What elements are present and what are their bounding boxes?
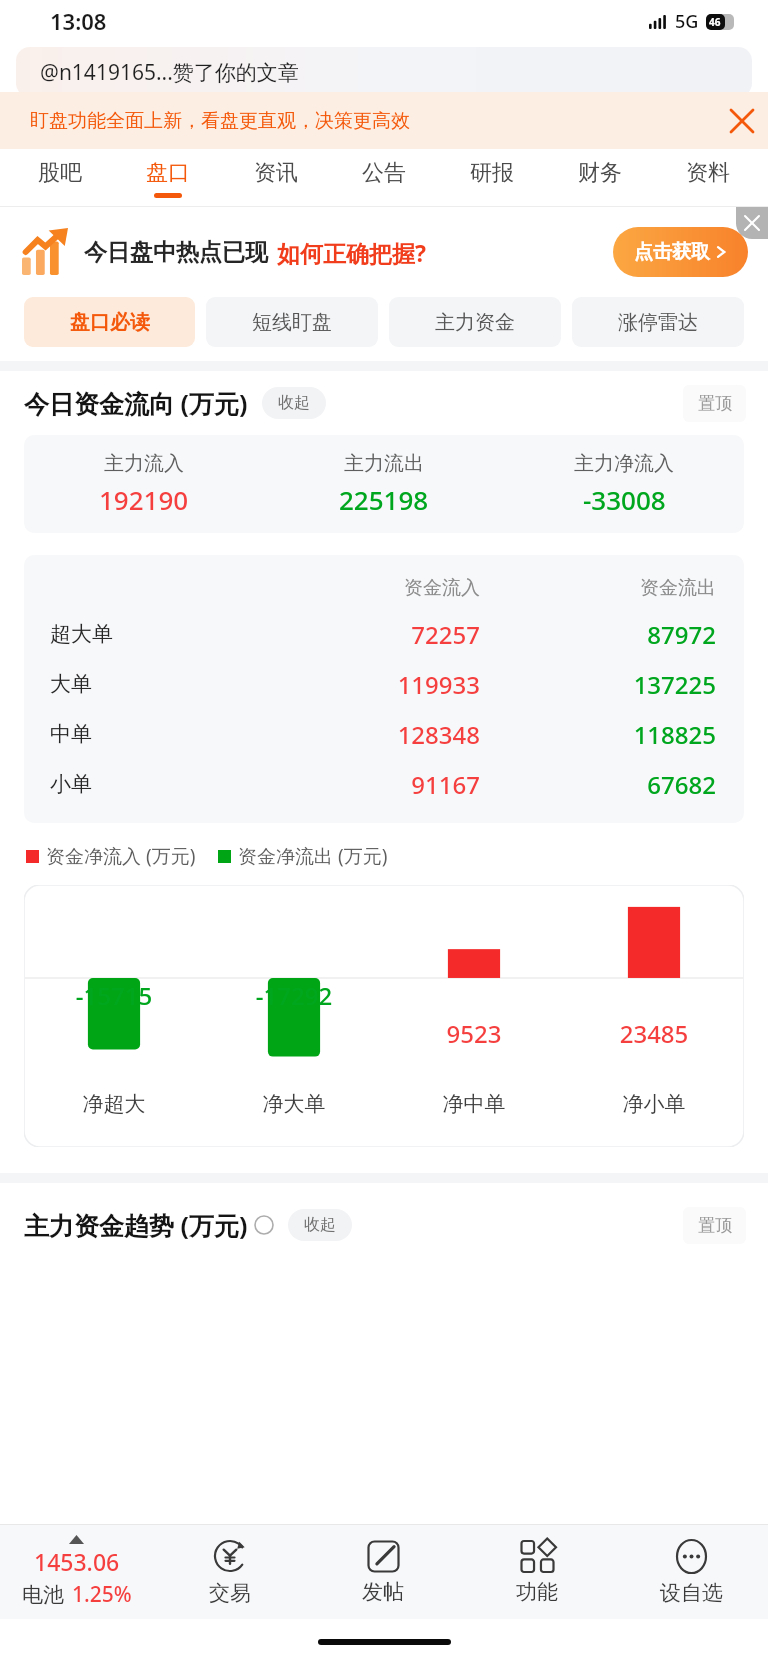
staticText: -17292 xyxy=(204,979,384,1012)
button[interactable]: 设自选 xyxy=(614,1525,768,1619)
staticText: 点击获取 xyxy=(634,240,710,264)
staticText: 股吧 xyxy=(38,159,82,187)
staticText: 短线盯盘 xyxy=(252,310,332,335)
staticText: 盘口必读 xyxy=(70,310,150,335)
staticText: 大单 xyxy=(50,671,272,697)
button[interactable]: 涨停雷达 xyxy=(572,297,744,347)
staticText: 交易 xyxy=(209,1580,251,1606)
button[interactable]: 置顶 xyxy=(683,385,746,422)
staticText: 研报 xyxy=(470,159,514,187)
button[interactable]: 主力资金 xyxy=(389,297,561,347)
staticText: 1.25% xyxy=(72,1580,132,1609)
staticText: 225198 xyxy=(339,482,429,517)
staticText: 主力流入 xyxy=(104,451,184,476)
staticText: 119933 xyxy=(272,668,480,701)
staticText: 公告 xyxy=(362,159,406,187)
button[interactable]: 盘口 xyxy=(114,149,222,207)
staticText: 67682 xyxy=(508,768,716,801)
button[interactable]: 点击获取 xyxy=(613,227,748,277)
staticText: 涨停雷达 xyxy=(618,310,698,335)
staticText: 72257 xyxy=(272,618,480,651)
staticText: 192190 xyxy=(99,482,189,517)
button[interactable]: 功能 xyxy=(460,1525,614,1619)
button[interactable]: 置顶 xyxy=(683,1207,746,1244)
button[interactable]: 收起 xyxy=(288,1209,352,1241)
button[interactable]: 收起 xyxy=(262,387,326,419)
staticText: 主力流出 xyxy=(344,451,424,476)
button[interactable]: 公告 xyxy=(330,149,438,207)
staticText: 设自选 xyxy=(660,1580,723,1606)
staticText: 主力净流入 xyxy=(574,451,674,476)
staticText: 资金流入 xyxy=(272,576,480,600)
staticText: 5G xyxy=(675,9,699,34)
button[interactable]: 股吧 xyxy=(6,149,114,207)
staticText: 资金净流出 (万元) xyxy=(238,843,388,869)
button[interactable]: 财务 xyxy=(546,149,654,207)
staticText: 发帖 xyxy=(362,1579,404,1605)
button[interactable]: 资料 xyxy=(654,149,762,207)
staticText: 87972 xyxy=(508,618,716,651)
staticText: 9523 xyxy=(384,1017,564,1050)
button[interactable]: 交易 xyxy=(153,1525,306,1619)
button[interactable]: 资讯 xyxy=(222,149,330,207)
staticText: 置顶 xyxy=(698,1215,732,1236)
staticText: 137225 xyxy=(508,668,716,701)
staticText: 盘口 xyxy=(146,159,190,187)
staticText: 13:08 xyxy=(50,6,107,36)
staticText: -33008 xyxy=(583,482,666,517)
staticText: 净小单 xyxy=(564,1091,744,1117)
staticText: 今日盘中热点已现 xyxy=(84,238,268,267)
staticText: 今日资金流向 (万元) xyxy=(24,386,248,420)
button[interactable]: 发帖 xyxy=(306,1525,460,1619)
staticText: 净中单 xyxy=(384,1091,564,1117)
staticText: 118825 xyxy=(508,718,716,751)
staticText: 收起 xyxy=(304,1215,336,1235)
button[interactable]: 研报 xyxy=(438,149,546,207)
staticText: 收起 xyxy=(278,393,310,413)
staticText: @n1419165...赞了你的文章 xyxy=(40,58,299,87)
staticText: 23485 xyxy=(564,1017,744,1050)
staticText: 资金净流入 (万元) xyxy=(46,843,196,869)
staticText: 资料 xyxy=(686,159,730,187)
staticText: 净超大 xyxy=(24,1091,204,1117)
staticText: 功能 xyxy=(516,1579,558,1605)
staticText: 电池 xyxy=(22,1582,64,1608)
button[interactable]: 关闭广告 xyxy=(736,207,768,239)
staticText: 超大单 xyxy=(50,621,272,647)
staticText: 中单 xyxy=(50,721,272,747)
staticText: 财务 xyxy=(578,159,622,187)
staticText: 如何正确把握? xyxy=(277,237,426,268)
staticText: 128348 xyxy=(272,718,480,751)
button[interactable]: 短线盯盘 xyxy=(206,297,378,347)
button[interactable]: 关闭 xyxy=(716,95,768,147)
staticText: 净大单 xyxy=(204,1091,384,1117)
staticText: 置顶 xyxy=(698,393,732,414)
staticText: 主力资金趋势 (万元) xyxy=(24,1208,248,1242)
staticText: 1453.06 xyxy=(34,1546,120,1577)
staticText: 盯盘功能全面上新，看盘更直观，决策更高效 xyxy=(30,109,410,133)
button[interactable]: 1453.06 xyxy=(0,1525,153,1619)
button[interactable]: 盘口必读 xyxy=(24,297,195,347)
button[interactable]: 今日盘中热点已现 xyxy=(22,207,748,297)
staticText: 91167 xyxy=(272,768,480,801)
button[interactable]: @n1419165...赞了你的文章 xyxy=(16,47,752,97)
staticText: 46 xyxy=(709,15,721,29)
staticText: 资讯 xyxy=(254,159,298,187)
staticText: -15715 xyxy=(24,979,204,1012)
staticText: 小单 xyxy=(50,771,272,797)
staticText: 主力资金 xyxy=(435,310,515,335)
staticText: 资金流出 xyxy=(508,576,716,600)
